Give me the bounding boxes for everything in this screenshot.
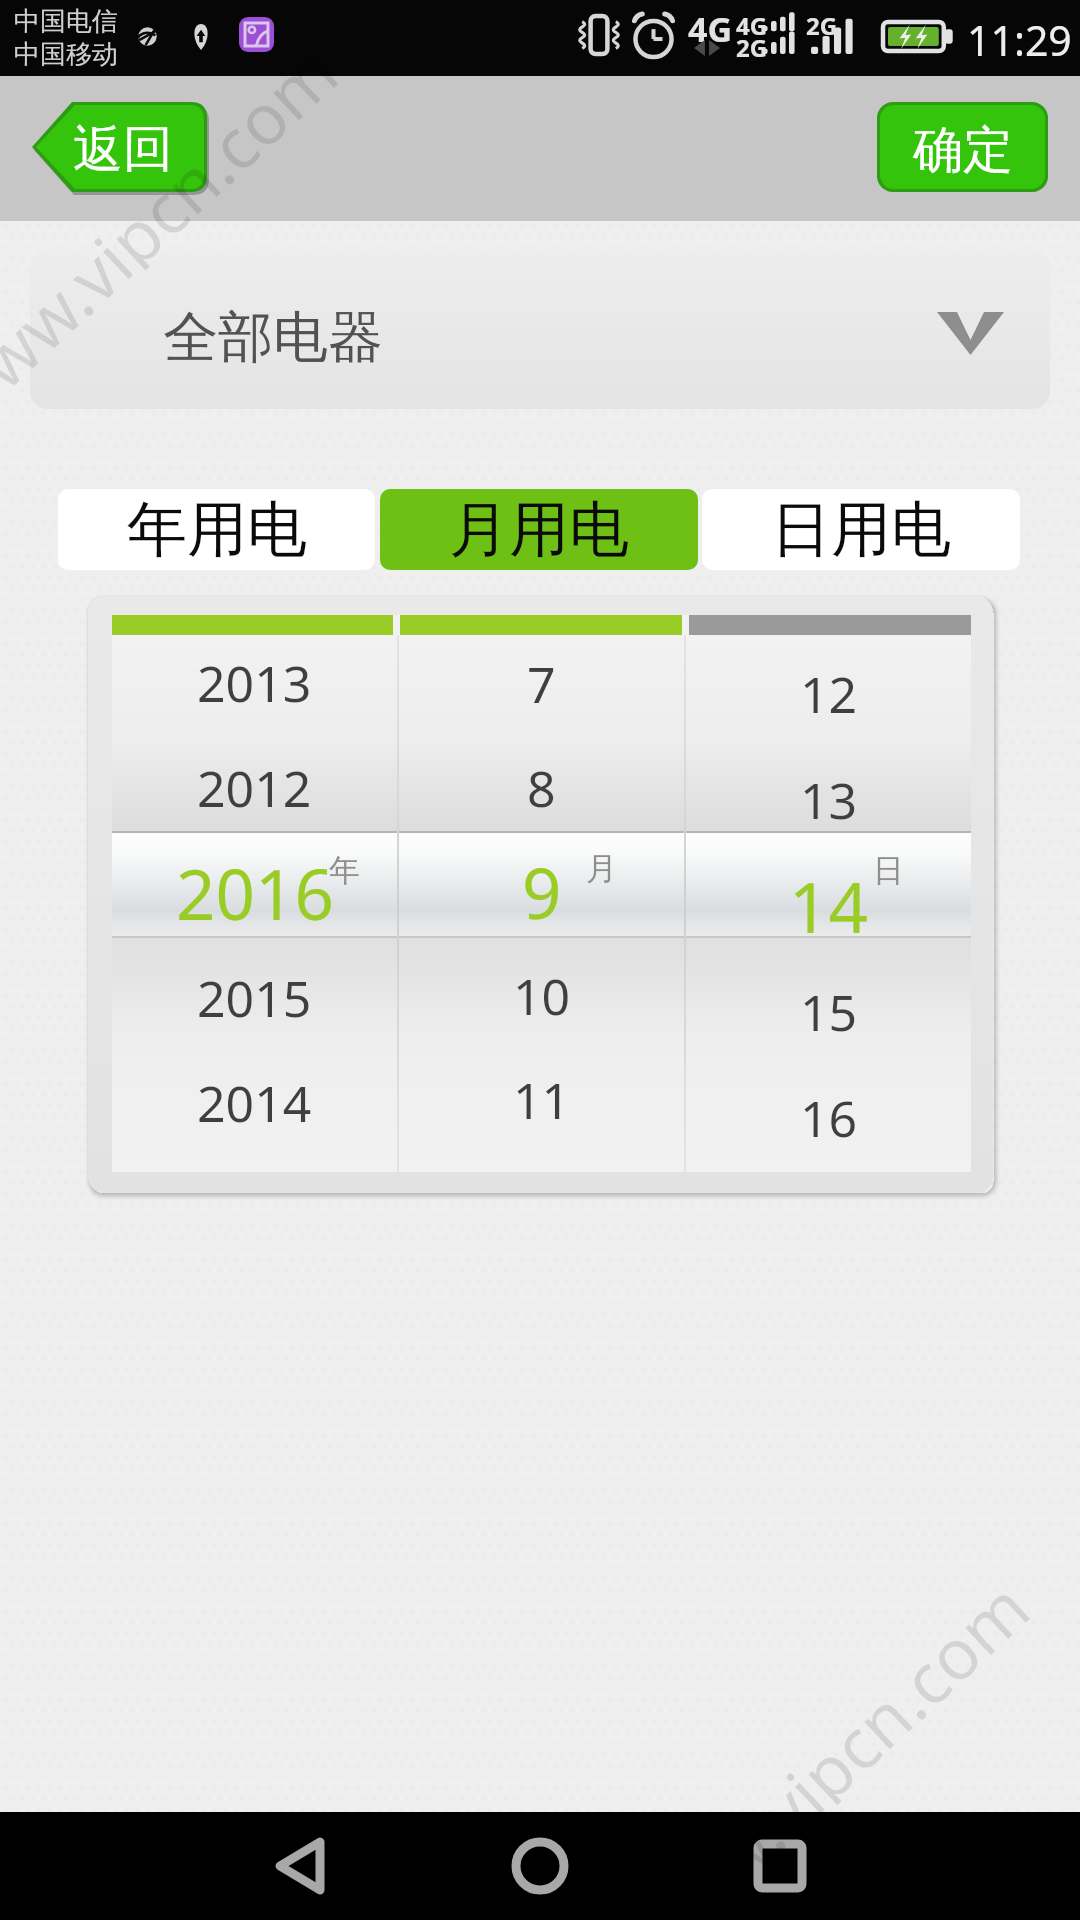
staticText: 年用电	[127, 492, 307, 568]
staticText: 月	[586, 849, 617, 888]
button[interactable]: 年用电	[58, 489, 375, 570]
button[interactable]: 日用电	[702, 489, 1020, 570]
staticText: 返回	[73, 118, 173, 181]
staticText: 2016	[176, 846, 334, 940]
staticText: 2G	[806, 9, 838, 42]
staticText: 日用电	[771, 492, 951, 568]
staticText: 2013	[197, 649, 312, 717]
staticText: 2014	[197, 1069, 312, 1137]
staticText: www.vipcn.com	[607, 1560, 1038, 1920]
staticText: 9	[522, 845, 562, 939]
staticText: 15	[800, 978, 858, 1046]
staticText: www.vipcn.com	[0, 25, 346, 434]
staticText: 2G	[736, 31, 768, 64]
button[interactable]: Back	[240, 1812, 360, 1920]
staticText: 4G	[736, 9, 768, 42]
staticText: 中国电信	[14, 5, 118, 38]
staticText: 2012	[197, 754, 312, 822]
staticText: 中国移动	[14, 38, 118, 71]
staticText: 11	[513, 1066, 571, 1134]
staticText: 10	[513, 962, 571, 1030]
staticText: 16	[800, 1084, 858, 1152]
staticText: 2015	[197, 964, 312, 1032]
staticText: 12	[800, 660, 858, 728]
staticText: 14	[789, 859, 868, 953]
button[interactable]: Home	[480, 1812, 600, 1920]
staticText: 13	[800, 766, 858, 834]
staticText: 11:29	[967, 12, 1072, 68]
staticText: 8	[527, 754, 556, 822]
button[interactable]: 全部电器	[30, 251, 1050, 409]
staticText: 7	[527, 650, 556, 718]
staticText: 4G	[688, 6, 733, 52]
staticText: 月用电	[449, 492, 629, 568]
button[interactable]: Recent apps	[720, 1812, 840, 1920]
button[interactable]: 返回	[32, 102, 207, 192]
staticText: 确定	[913, 119, 1013, 182]
staticText: 年	[329, 851, 360, 890]
staticText: 全部电器	[163, 303, 383, 372]
button[interactable]: 月用电	[380, 489, 698, 570]
button[interactable]: 确定	[877, 102, 1048, 192]
staticText: 日	[873, 851, 904, 890]
